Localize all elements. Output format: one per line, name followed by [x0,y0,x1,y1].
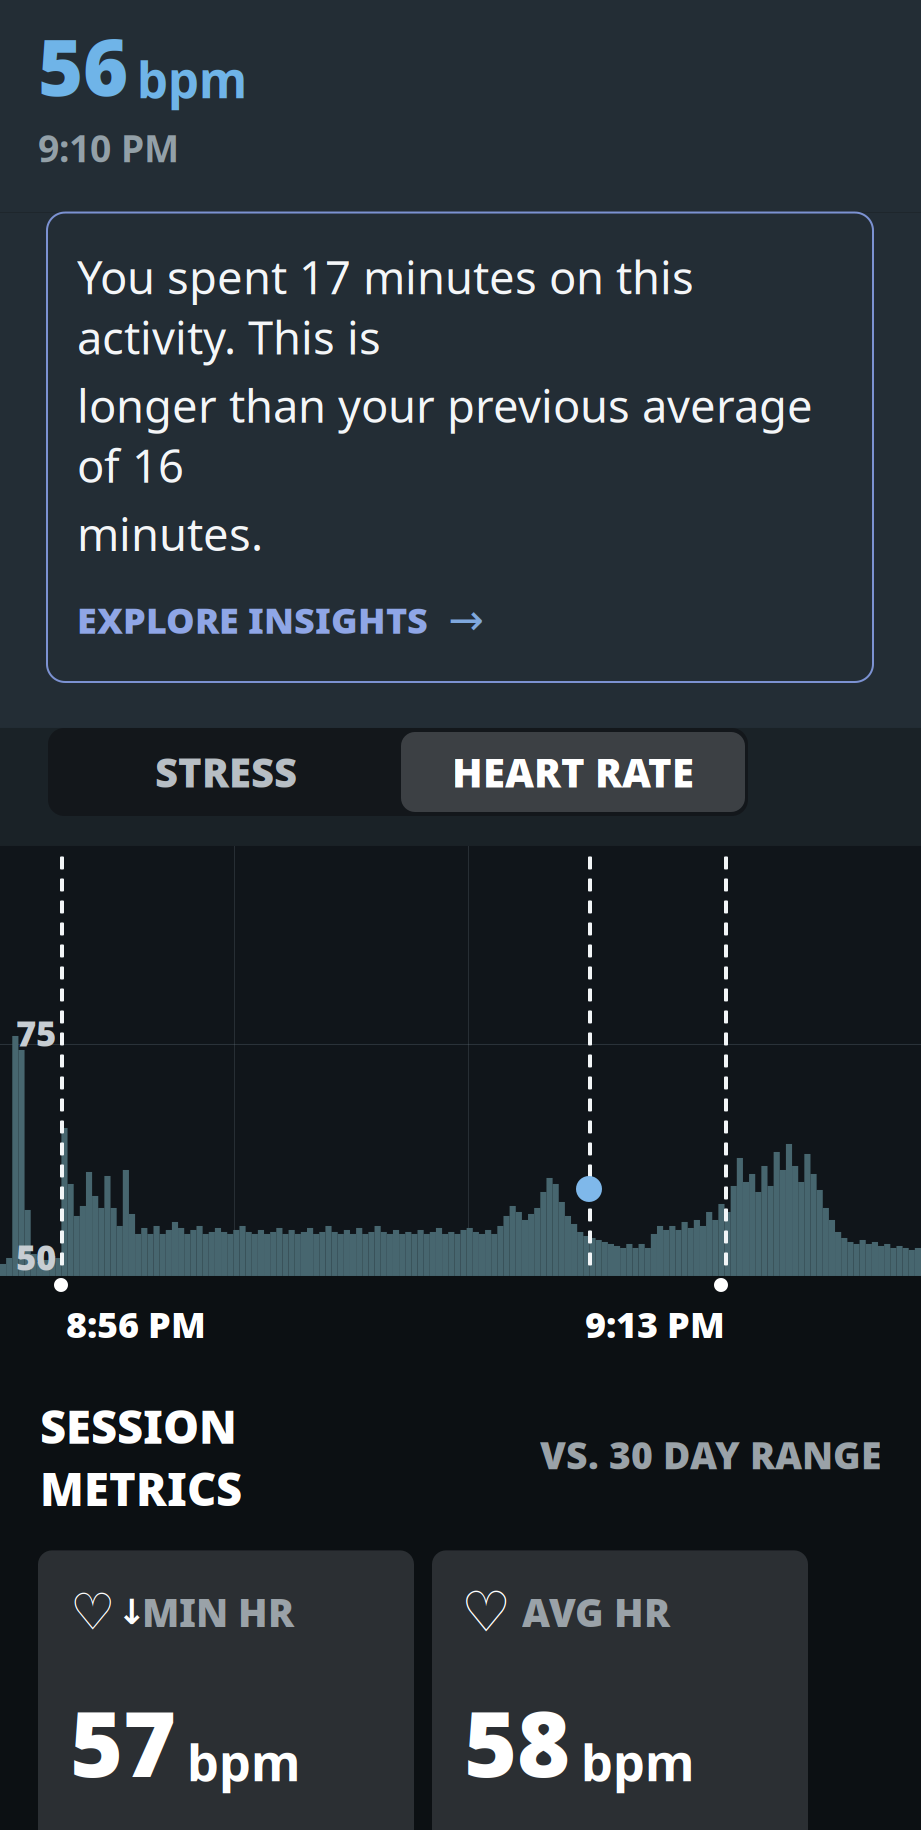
staticText: longer than your previous average of 16 [77,375,813,495]
staticText: MIN HR [142,1586,294,1638]
staticText: bpm [581,1728,694,1795]
staticText: 8:56 PM [66,1300,206,1348]
staticText: 57 [70,1682,176,1802]
button[interactable]: HEART RATE [401,732,745,812]
staticText: EXPLORE INSIGHTS [77,596,428,644]
staticText: STRESS [155,745,297,798]
staticText: 58 [464,1682,570,1802]
staticText: METRICS [40,1458,242,1518]
staticText: You spent 17 minutes on this activity. T… [77,247,694,367]
staticText: → [448,596,484,644]
staticText: ♡ [461,1580,511,1644]
staticText: VS. 30 DAY RANGE [540,1430,881,1480]
staticText: HEART RATE [452,745,694,798]
staticText: bpm [187,1728,300,1795]
staticText: 75 [16,1010,56,1056]
button[interactable]: STRESS [51,728,401,816]
staticText: 9:10 PM [38,123,179,173]
staticText: AVG HR [522,1586,670,1638]
staticText: 56 [38,14,128,117]
button[interactable]: ♡ [432,1550,808,1830]
staticText: 9:13 PM [585,1300,725,1348]
staticText: SESSION [40,1396,237,1456]
button[interactable]: ♡ [38,1550,414,1830]
staticText: ↓ [117,1592,146,1632]
staticText: minutes. [77,503,263,564]
staticText: 50 [16,1234,56,1280]
staticText: bpm [137,46,247,112]
button[interactable]: EXPLORE INSIGHTS [77,564,484,646]
staticText: ♡ [70,1583,115,1641]
